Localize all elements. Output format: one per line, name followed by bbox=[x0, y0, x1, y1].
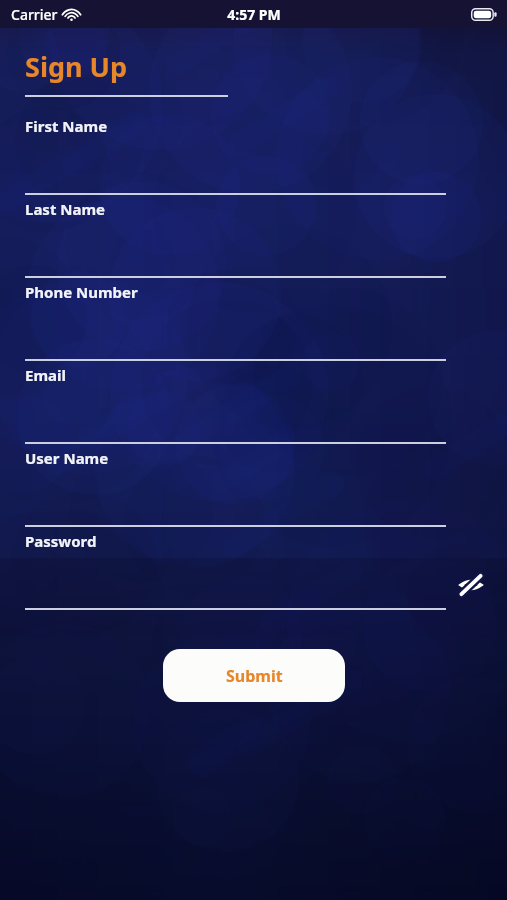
staticText: First Name bbox=[25, 116, 108, 136]
button[interactable]: Email bbox=[0, 361, 507, 444]
staticText: User Name bbox=[25, 448, 109, 468]
staticText: Phone Number bbox=[25, 282, 138, 302]
button[interactable]: Show password bbox=[457, 571, 485, 599]
button[interactable]: First Name bbox=[0, 112, 507, 195]
staticText: Password bbox=[25, 531, 97, 551]
button[interactable]: Phone Number bbox=[0, 278, 507, 361]
button[interactable]: User Name bbox=[0, 444, 507, 527]
staticText: Email bbox=[25, 365, 66, 385]
staticText: 4:57 PM bbox=[227, 5, 281, 24]
button[interactable]: Password bbox=[0, 527, 507, 610]
staticText: Carrier bbox=[11, 5, 58, 24]
staticText: Submit bbox=[226, 665, 283, 687]
button[interactable]: Submit bbox=[163, 649, 345, 702]
button[interactable]: Last Name bbox=[0, 195, 507, 278]
staticText: Sign Up bbox=[25, 48, 128, 85]
staticText: Last Name bbox=[25, 199, 106, 219]
